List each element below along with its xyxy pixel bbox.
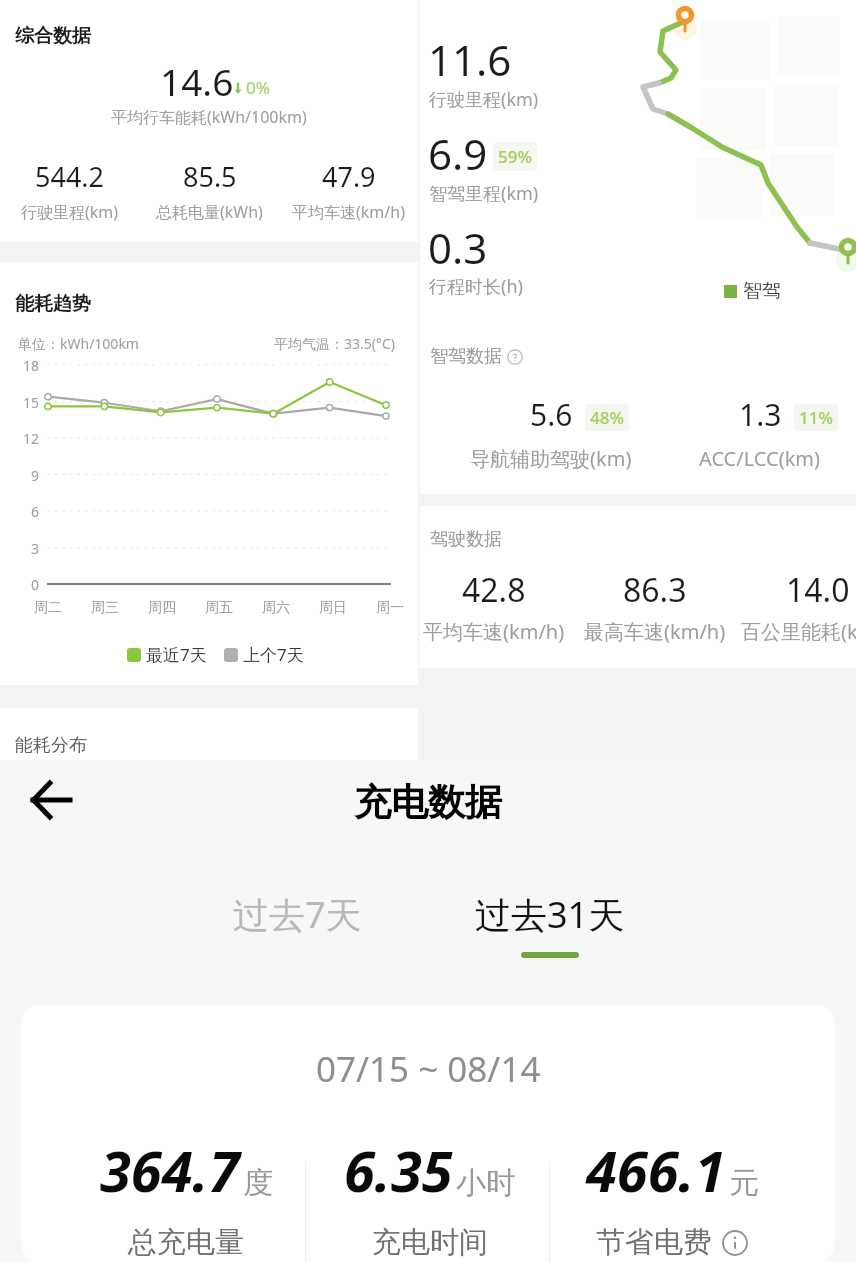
staticText: 0 [31, 575, 40, 594]
staticText: 86.3 [623, 568, 687, 612]
staticText: 驾驶数据 [430, 528, 502, 551]
staticText: 0% [246, 76, 270, 99]
staticText: 总耗电量(kWh) [156, 201, 263, 223]
staticText: 85.5 [183, 158, 237, 195]
staticText: 能耗分布 [15, 734, 87, 757]
staticText: 周五 [205, 599, 233, 617]
staticText: 过去7天 [233, 890, 362, 938]
staticText: 42.8 [462, 568, 526, 612]
staticText: 百公里能耗(kWh) [741, 618, 856, 645]
button[interactable]: Saved electricity fee info [722, 1230, 748, 1256]
staticText: 元 [729, 1164, 759, 1202]
button[interactable]: 过去31天 [470, 890, 630, 938]
staticText: 平均车速(km/h) [292, 201, 405, 223]
staticText: 智驾里程(km) [429, 181, 539, 206]
button[interactable]: Smart driving data help [430, 345, 523, 368]
staticText: 11% [799, 406, 833, 429]
staticText: 总充电量 [128, 1224, 244, 1261]
staticText: 6 [31, 502, 40, 521]
staticText: 11.6 [428, 31, 512, 88]
button[interactable]: 过去7天 [217, 890, 377, 938]
staticText: 行驶里程(km) [21, 201, 119, 223]
staticText: 周二 [34, 599, 62, 617]
staticText: 能耗趋势 [15, 292, 91, 316]
staticText: 上个7天 [243, 643, 304, 666]
staticText: 智驾数据 [430, 345, 502, 368]
button[interactable]: 驾驶数据 [420, 506, 856, 668]
staticText: 48% [590, 406, 624, 429]
staticText: ACC/LCC(km) [699, 445, 821, 472]
staticText: 平均行车能耗(kWh/100km) [111, 106, 307, 128]
staticText: 节省电费 [596, 1224, 712, 1261]
staticText: 行程时长(h) [429, 274, 523, 299]
staticText: 行驶里程(km) [429, 87, 539, 112]
staticText: 1.3 [739, 394, 782, 435]
staticText: 最高车速(km/h) [584, 618, 726, 645]
staticText: 充电时间 [372, 1224, 488, 1261]
staticText: 综合数据 [15, 24, 91, 48]
staticText: 6.9 [428, 125, 488, 182]
staticText: 9 [31, 466, 40, 485]
staticText: 周六 [262, 599, 290, 617]
staticText: 周日 [319, 599, 347, 617]
staticText: 47.9 [322, 158, 376, 195]
staticText: 18 [23, 356, 40, 375]
staticText: 充电数据 [354, 779, 502, 826]
button[interactable]: 能耗分布 [0, 708, 418, 798]
staticText: 小时 [456, 1164, 516, 1202]
staticText: 度 [243, 1164, 273, 1202]
staticText: 平均车速(km/h) [423, 618, 565, 645]
staticText: 过去31天 [475, 890, 625, 938]
staticText: 平均气温：33.5(°C) [274, 334, 396, 353]
staticText: 364.7 [100, 1132, 240, 1208]
button[interactable]: 综合数据 [0, 0, 418, 242]
staticText: 15 [23, 393, 40, 412]
staticText: 6.35 [344, 1132, 453, 1208]
staticText: 5.6 [530, 394, 573, 435]
staticText: 导航辅助驾驶(km) [470, 445, 632, 472]
button[interactable]: 能耗趋势 [0, 262, 418, 685]
staticText: 14.0 [786, 568, 850, 612]
staticText: 59% [498, 145, 532, 168]
staticText: 14.6 [160, 56, 234, 106]
staticText: 周三 [91, 599, 119, 617]
staticText: 周一 [376, 599, 404, 617]
staticText: 单位：kWh/100km [18, 334, 139, 353]
staticText: 3 [31, 539, 40, 558]
staticText: 466.1 [586, 1132, 726, 1208]
staticText: 12 [23, 429, 40, 448]
staticText: 544.2 [35, 158, 105, 195]
staticText: 智驾 [743, 279, 781, 303]
button[interactable]: Back [15, 764, 87, 836]
staticText: 0.3 [428, 219, 488, 276]
staticText: 最近7天 [146, 643, 207, 666]
staticText: 周四 [148, 599, 176, 617]
staticText: 07/15 ~ 08/14 [316, 1045, 541, 1093]
